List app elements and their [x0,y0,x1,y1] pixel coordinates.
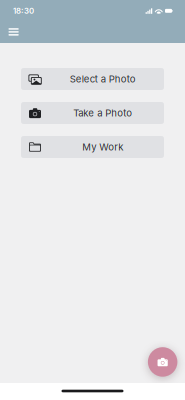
button[interactable]: Take a photo [148,347,177,377]
staticText: My Work [82,141,123,153]
button[interactable]: Menu [0,22,27,43]
button[interactable]: Select a Photo [21,68,164,90]
staticText: 18:30 [13,6,34,16]
button[interactable]: My Work [21,136,164,158]
button[interactable]: Take a Photo [21,102,164,124]
staticText: Take a Photo [73,107,132,119]
staticText: Select a Photo [70,73,136,85]
